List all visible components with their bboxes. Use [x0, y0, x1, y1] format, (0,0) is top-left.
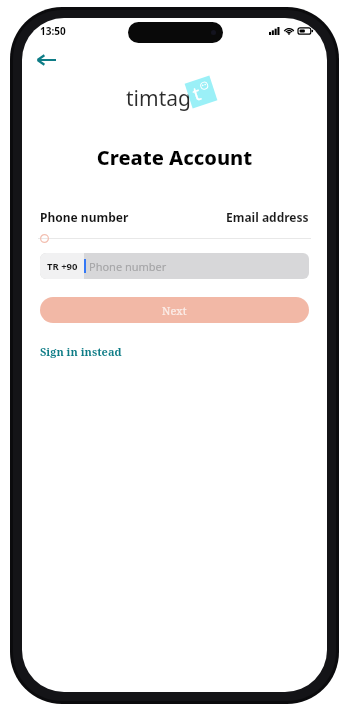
staticText: Email address: [226, 209, 309, 225]
button[interactable]: Back: [30, 44, 62, 76]
staticText: Next: [162, 303, 187, 318]
staticText: TR +90: [47, 260, 78, 273]
button[interactable]: Phone number: [40, 209, 129, 225]
staticText: t: [189, 80, 204, 107]
staticText: Phone number: [40, 209, 129, 225]
staticText: Sign in instead: [40, 344, 122, 359]
staticText: Create Account: [22, 144, 327, 171]
button[interactable]: Email address: [226, 209, 309, 225]
button[interactable]: Next: [40, 297, 309, 323]
staticText: timtag: [126, 84, 191, 113]
staticText: Phone number: [89, 259, 167, 274]
button[interactable]: Sign in instead: [40, 344, 122, 359]
staticText: 13:50: [40, 24, 66, 38]
button[interactable]: TR +90: [40, 253, 309, 279]
